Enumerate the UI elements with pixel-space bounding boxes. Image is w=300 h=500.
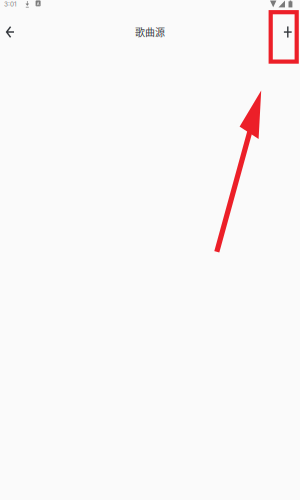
staticText: 歌曲源 (135, 25, 165, 39)
button[interactable]: Back (0, 12, 29, 52)
button[interactable]: Add song source (269, 12, 300, 52)
staticText: 3:01 (4, 0, 17, 8)
